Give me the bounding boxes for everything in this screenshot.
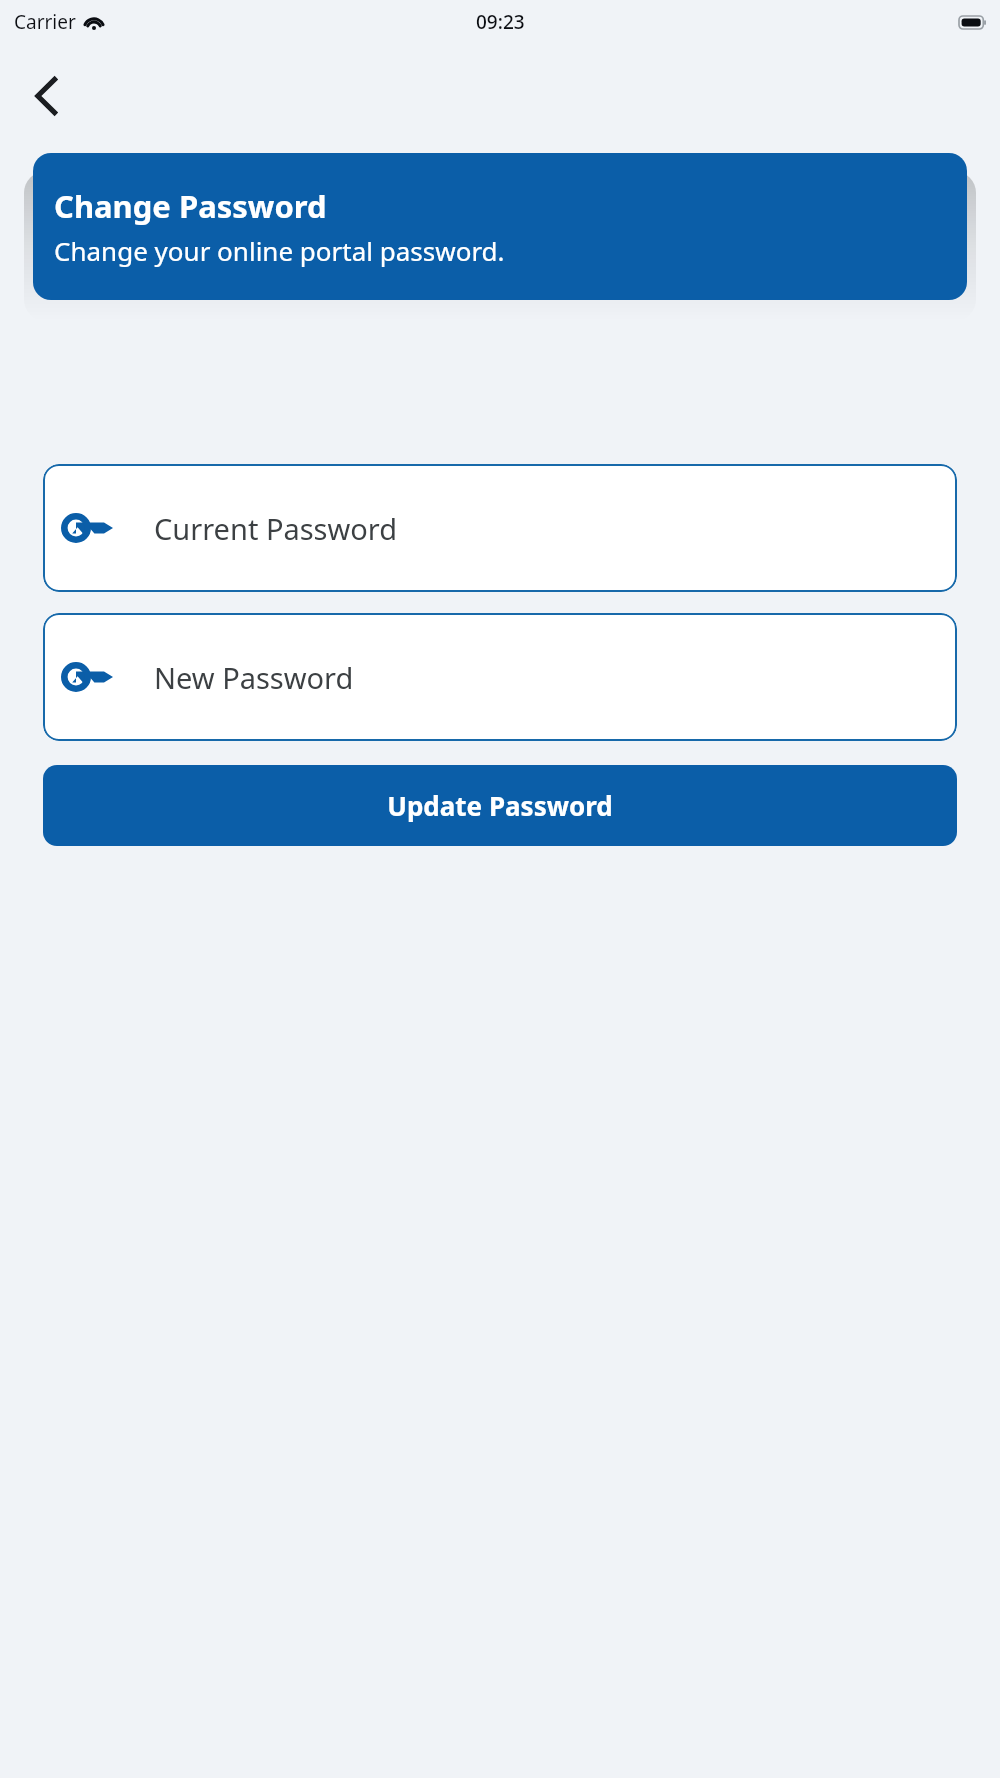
staticText: Update Password xyxy=(387,788,613,823)
staticText: Change your online portal password. xyxy=(54,233,505,268)
button[interactable]: New Password xyxy=(43,613,957,741)
button[interactable]: Current Password xyxy=(43,464,957,592)
button[interactable]: Change Password xyxy=(33,153,967,300)
staticText: Change Password xyxy=(54,185,327,227)
staticText: Current Password xyxy=(154,509,398,548)
button[interactable]: Back xyxy=(20,68,76,124)
button[interactable]: Update Password xyxy=(43,765,957,846)
staticText: 09:23 xyxy=(476,9,525,35)
staticText: Carrier xyxy=(14,9,76,35)
staticText: New Password xyxy=(154,658,354,697)
